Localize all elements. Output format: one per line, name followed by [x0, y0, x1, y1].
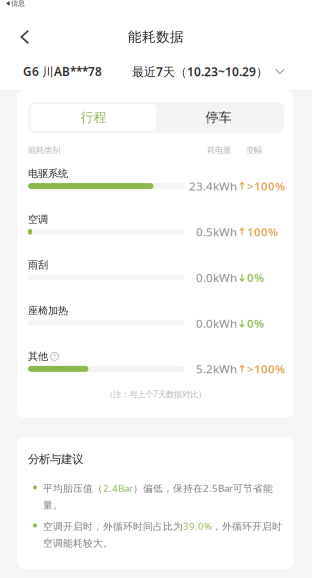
- staticText: 变幅: [246, 145, 262, 156]
- staticText: 最近7天（10.23~10.29）: [132, 63, 268, 80]
- staticText: ?: [53, 352, 56, 361]
- staticText: 0.0kWh: [196, 270, 237, 285]
- staticText: 电驱系统: [28, 167, 68, 180]
- button[interactable]: 最近7天（10.23~10.29）: [132, 63, 285, 80]
- staticText: 其他: [28, 350, 48, 363]
- staticText: 座椅加热: [28, 304, 68, 317]
- staticText: 100%: [247, 224, 278, 240]
- staticText: 平均胎压值（2.4Bar）偏低，保持在2.5Bar可节省能量。: [43, 481, 273, 511]
- staticText: （注：与上个7天数据对比）: [105, 388, 206, 400]
- staticText: 信息: [11, 0, 25, 8]
- staticText: 耗电量: [207, 145, 231, 156]
- staticText: 停车: [205, 109, 231, 126]
- staticText: 23.4kWh: [189, 178, 237, 194]
- staticText: 行程: [80, 109, 106, 126]
- staticText: G6 川AB***78: [23, 63, 102, 79]
- button[interactable]: 行程: [31, 104, 156, 131]
- staticText: >100%: [247, 178, 285, 194]
- staticText: 0.0kWh: [196, 315, 237, 331]
- staticText: 0%: [247, 315, 264, 331]
- staticText: 0%: [247, 270, 264, 285]
- staticText: 5.2kWh: [196, 361, 237, 377]
- staticText: 空调: [28, 213, 48, 226]
- staticText: >100%: [247, 361, 285, 377]
- staticText: 能耗数据: [128, 28, 184, 45]
- staticText: 雨刮: [28, 259, 48, 271]
- staticText: 空调开启时，外循环时间占比为39.0%，外循环开启时空调能耗较大。: [43, 519, 282, 549]
- button[interactable]: Back: [9, 22, 41, 52]
- staticText: 0.5kWh: [196, 224, 237, 240]
- button[interactable]: 停车: [156, 104, 281, 131]
- staticText: 分析与建议: [28, 452, 83, 466]
- staticText: 能耗类别: [28, 145, 60, 156]
